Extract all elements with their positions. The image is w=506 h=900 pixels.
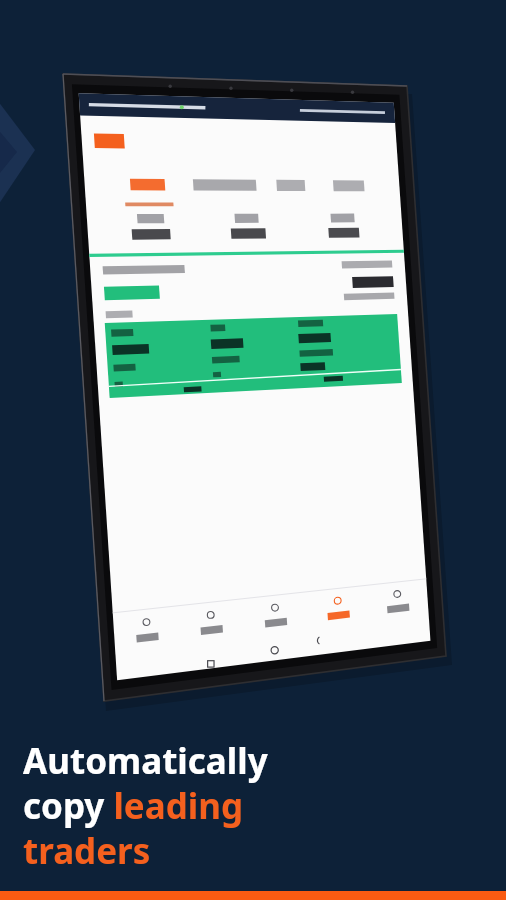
- button[interactable]: Automatically copy leading traders promo: [0, 0, 506, 900]
